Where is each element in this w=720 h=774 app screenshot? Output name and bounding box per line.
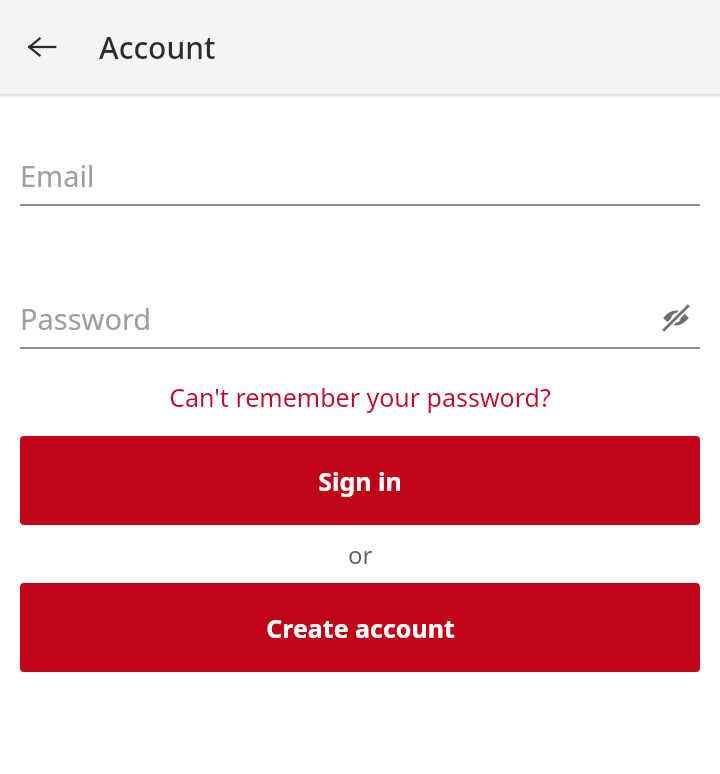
button[interactable]: Show password: [652, 296, 700, 340]
staticText: Create account: [266, 611, 455, 645]
button[interactable]: Back: [14, 19, 70, 75]
staticText: Can't remember your password?: [169, 380, 551, 414]
button[interactable]: Sign in: [20, 436, 700, 525]
button[interactable]: Create account: [20, 583, 700, 672]
staticText: Password: [20, 299, 152, 338]
staticText: Sign in: [318, 464, 402, 498]
staticText: or: [348, 538, 373, 571]
staticText: Account: [99, 27, 216, 68]
button[interactable]: Can't remember your password?: [20, 380, 700, 414]
staticText: Email: [20, 156, 95, 195]
